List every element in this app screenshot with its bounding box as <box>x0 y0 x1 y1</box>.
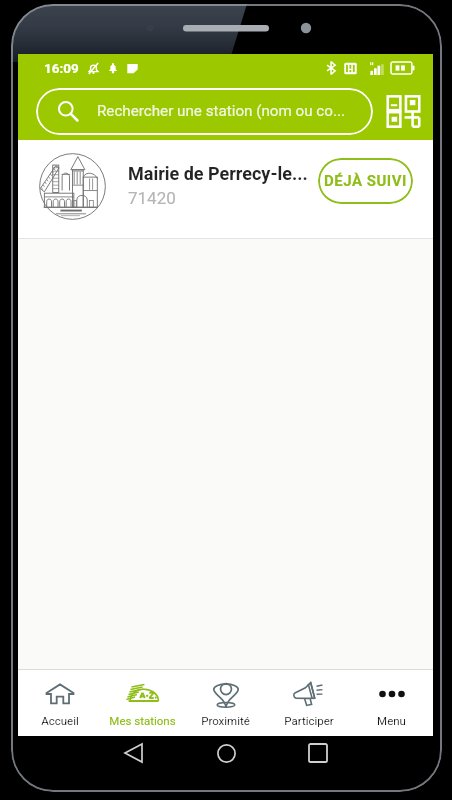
button[interactable]: Mairie de Perrecy-le... <box>18 140 433 239</box>
staticText: Accueil <box>41 714 79 727</box>
staticText: 16:09 <box>44 60 79 76</box>
button[interactable]: Mes stations <box>101 670 184 736</box>
button[interactable]: DÉJÀ SUIVI <box>318 158 413 204</box>
staticText: Proximité <box>201 714 250 727</box>
button[interactable]: Accueil <box>18 670 101 736</box>
button[interactable]: Rechercher une station (nom ou co... <box>36 88 373 135</box>
button[interactable]: Scanner un QR code <box>380 88 427 135</box>
staticText: Mes stations <box>109 714 176 727</box>
staticText: 71420 <box>128 188 176 208</box>
button[interactable]: Applications récentes <box>296 736 340 770</box>
staticText: DÉJÀ SUIVI <box>324 172 407 190</box>
button[interactable]: Retour <box>111 736 155 770</box>
button[interactable]: Accueil <box>204 736 248 770</box>
staticText: Mairie de Perrecy-le... <box>128 163 328 184</box>
button[interactable]: Menu <box>350 670 433 736</box>
staticText: Menu <box>377 714 406 727</box>
staticText: Rechercher une station (nom ou co... <box>97 102 345 120</box>
button[interactable]: Proximité <box>184 670 267 736</box>
staticText: Participer <box>284 714 334 727</box>
button[interactable]: Participer <box>267 670 350 736</box>
